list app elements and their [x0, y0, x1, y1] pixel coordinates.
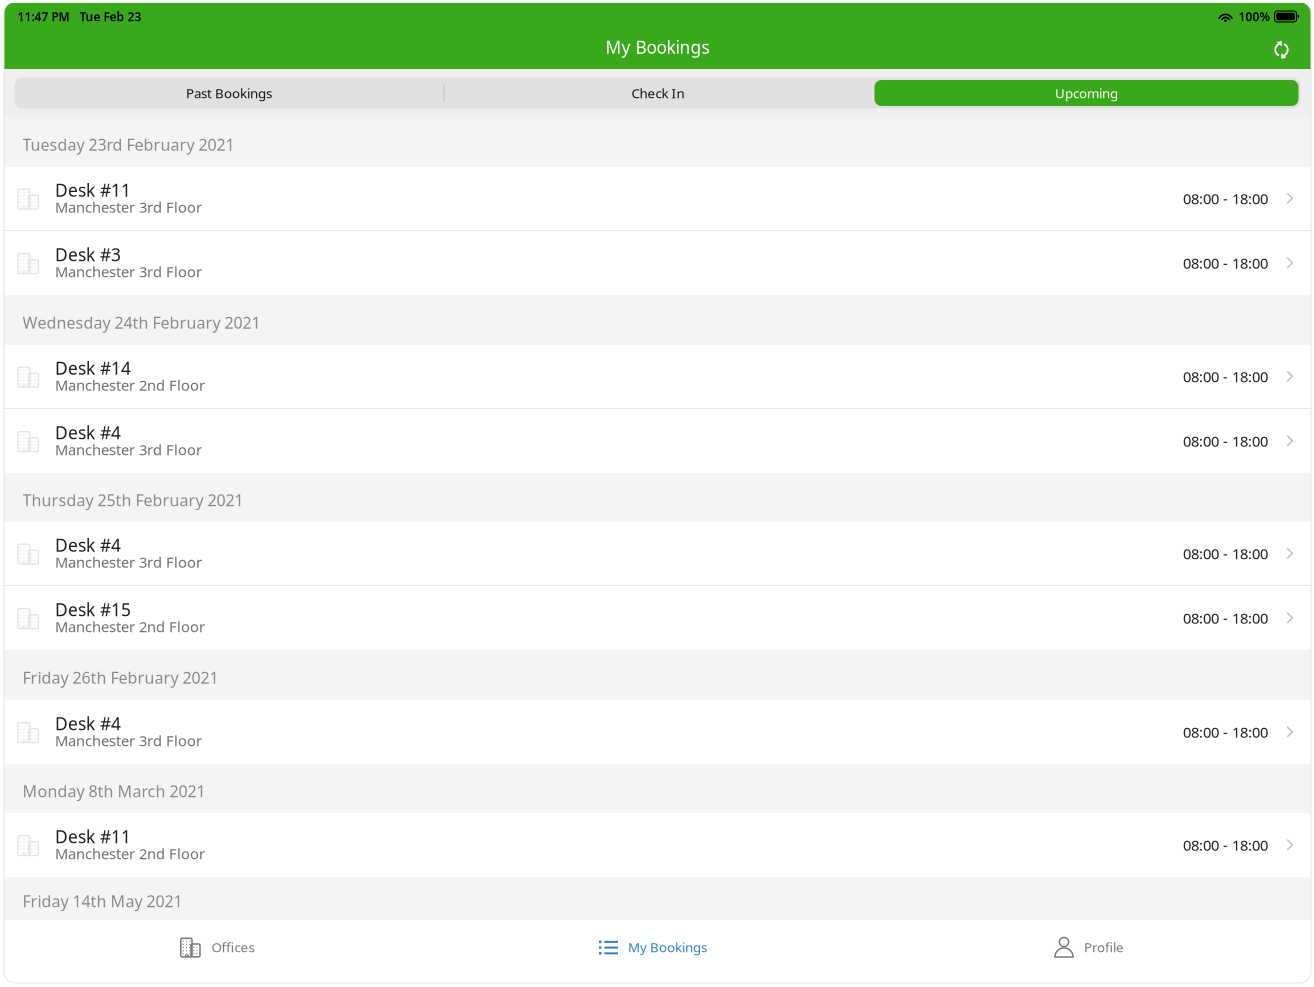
staticText: Tuesday 23rd February 2021: [22, 134, 234, 155]
staticText: 11:47 PM: [17, 8, 69, 24]
staticText: 08:00 - 18:00: [1183, 835, 1268, 855]
staticText: 08:00 - 18:00: [1183, 431, 1268, 451]
button[interactable]: Profile: [875, 920, 1311, 982]
button[interactable]: Desk #3: [3, 231, 1311, 295]
staticText: Manchester 3rd Floor: [55, 197, 202, 217]
staticText: Desk #4: [55, 533, 121, 556]
button[interactable]: My Bookings: [439, 920, 875, 982]
staticText: Friday 26th February 2021: [22, 667, 218, 688]
staticText: Manchester 3rd Floor: [55, 440, 202, 459]
button[interactable]: Desk #11: [3, 813, 1311, 877]
staticText: Manchester 3rd Floor: [55, 262, 202, 281]
staticText: Desk #11: [55, 825, 131, 848]
staticText: Upcoming: [1055, 84, 1118, 102]
staticText: Desk #4: [55, 712, 121, 735]
button[interactable]: Check In: [443, 77, 872, 108]
staticText: Offices: [211, 938, 254, 956]
staticText: 08:00 - 18:00: [1183, 189, 1268, 208]
staticText: My Bookings: [628, 938, 707, 956]
staticText: Tue Feb 23: [79, 8, 141, 24]
staticText: My Bookings: [605, 35, 709, 58]
button[interactable]: Desk #4: [3, 409, 1311, 473]
staticText: 08:00 - 18:00: [1183, 367, 1268, 386]
staticText: 08:00 - 18:00: [1183, 608, 1268, 628]
staticText: Manchester 2nd Floor: [55, 375, 205, 395]
staticText: 08:00 - 18:00: [1183, 544, 1268, 563]
button[interactable]: Refresh: [1259, 30, 1303, 69]
staticText: Desk #15: [55, 598, 131, 621]
button[interactable]: Upcoming: [872, 77, 1300, 108]
staticText: Desk #4: [55, 421, 121, 444]
button[interactable]: Desk #4: [3, 522, 1311, 586]
staticText: Monday 8th March 2021: [22, 780, 205, 802]
button[interactable]: Desk #11: [3, 167, 1311, 231]
staticText: 08:00 - 18:00: [1183, 253, 1268, 273]
staticText: Desk #11: [55, 178, 131, 201]
staticText: Thursday 25th February 2021: [22, 489, 243, 511]
staticText: Profile: [1084, 938, 1124, 956]
staticText: Desk #14: [55, 356, 131, 379]
button[interactable]: Past Bookings: [14, 77, 443, 108]
staticText: Wednesday 24th February 2021: [22, 312, 260, 333]
button[interactable]: Desk #4: [3, 700, 1311, 764]
staticText: Friday 14th May 2021: [22, 890, 182, 912]
staticText: Manchester 3rd Floor: [55, 731, 202, 750]
staticText: Manchester 3rd Floor: [55, 552, 202, 572]
button[interactable]: Desk #14: [3, 345, 1311, 409]
staticText: Check In: [631, 84, 684, 102]
staticText: Past Bookings: [186, 84, 272, 102]
button[interactable]: Offices: [3, 920, 439, 982]
staticText: 08:00 - 18:00: [1183, 722, 1268, 742]
button[interactable]: Desk #15: [3, 586, 1311, 650]
staticText: Manchester 2nd Floor: [55, 617, 205, 636]
staticText: 100%: [1238, 8, 1270, 24]
staticText: Manchester 2nd Floor: [55, 844, 205, 863]
staticText: Desk #3: [55, 243, 121, 266]
